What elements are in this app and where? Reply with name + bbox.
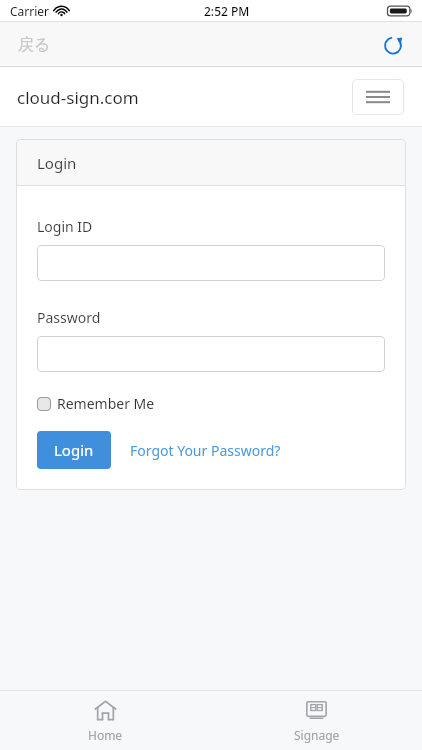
staticText: 戻る: [18, 35, 51, 55]
staticText: Login ID: [37, 217, 93, 236]
staticText: Carrier: [10, 3, 50, 19]
button[interactable]: 戻る: [14, 29, 55, 61]
staticText: cloud-sign.com: [17, 86, 139, 109]
staticText: Forgot Your Password?: [130, 441, 281, 460]
staticText: Password: [37, 308, 101, 327]
button[interactable]: Remember Me: [37, 392, 155, 415]
button[interactable]: Reload: [378, 30, 408, 60]
button[interactable]: [37, 336, 385, 372]
staticText: 2:52 PM: [204, 3, 250, 19]
button[interactable]: [37, 245, 385, 281]
button[interactable]: Home: [0, 690, 211, 750]
button[interactable]: Login: [37, 431, 111, 469]
button[interactable]: Forgot Your Password?: [111, 435, 300, 466]
staticText: Signage: [294, 727, 340, 743]
staticText: Home: [88, 727, 123, 743]
staticText: Login: [37, 153, 77, 173]
button[interactable]: Menu: [352, 79, 404, 115]
button[interactable]: Signage: [211, 690, 422, 750]
staticText: Remember Me: [57, 394, 155, 413]
staticText: Login: [54, 440, 94, 460]
